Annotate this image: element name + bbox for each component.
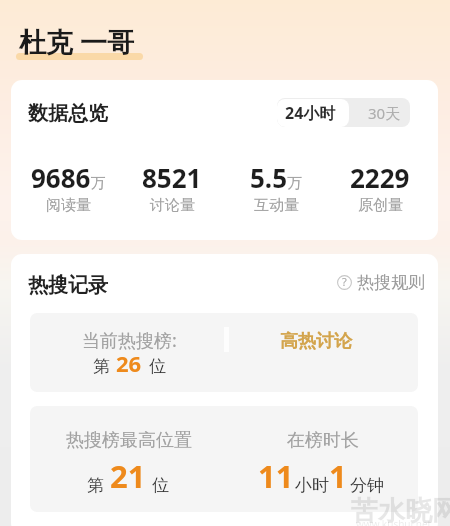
staticText: 热搜规则 (357, 272, 425, 293)
staticText: 高热讨论 (280, 330, 352, 353)
staticText: 小时 (295, 475, 329, 496)
staticText: 9686万 (31, 160, 106, 195)
other: 热搜规则 (337, 275, 352, 290)
staticText: 数据总览 (28, 101, 108, 126)
button[interactable]: 热搜榜最高位置 (30, 406, 418, 512)
staticText: 26 (116, 348, 142, 378)
staticText: 原创量 (358, 196, 403, 215)
staticText: www.kushui.net (356, 517, 432, 526)
staticText: 位 (152, 475, 169, 496)
staticText: ? (342, 274, 347, 289)
button[interactable]: 30天 (349, 98, 410, 127)
staticText: 热搜记录 (28, 273, 108, 298)
staticText: 11 (258, 455, 294, 497)
staticText: 热搜榜最高位置 (66, 429, 192, 452)
staticText: 当前热搜榜: (82, 328, 177, 353)
staticText: 8521 (142, 160, 202, 195)
staticText: 在榜时长 (287, 429, 359, 452)
staticText: 分钟 (350, 475, 384, 496)
staticText: 21 (110, 455, 146, 497)
button[interactable]: 24小时 (277, 99, 349, 127)
staticText: 5.5万 (250, 160, 303, 195)
staticText: 1 (329, 455, 347, 497)
staticText: 杜克 一哥 (19, 23, 135, 60)
staticText: 24小时 (285, 102, 336, 124)
staticText: 阅读量 (46, 196, 91, 215)
staticText: 2229 (350, 160, 410, 195)
staticText: 讨论量 (150, 196, 195, 215)
staticText: 互动量 (254, 196, 299, 215)
button[interactable]: 当前热搜榜: (30, 313, 418, 392)
staticText: 30天 (368, 103, 401, 123)
staticText: 第 (93, 356, 110, 377)
staticText: 苦水晓网 (351, 494, 450, 526)
staticText: 第 (87, 475, 104, 496)
button[interactable]: 热搜规则 (333, 268, 429, 297)
staticText: 位 (149, 356, 166, 377)
